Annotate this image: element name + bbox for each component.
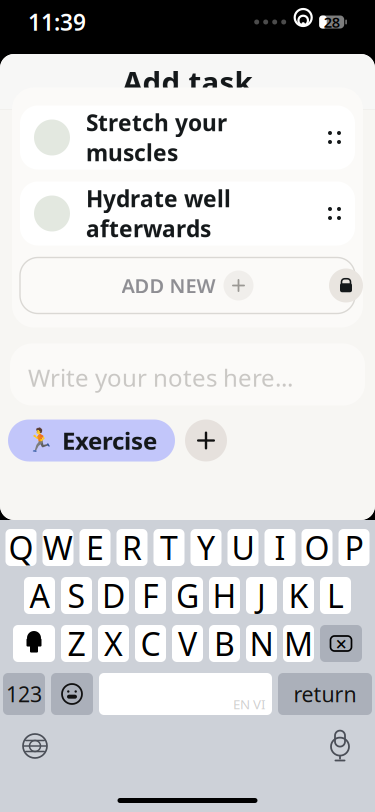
staticText: K [288,574,308,617]
button[interactable]: C [135,625,166,662]
button[interactable]: Hydrate well afterwards [20,181,355,245]
button[interactable]: Stretch your muscles [20,105,355,169]
staticText: return [293,680,356,708]
button[interactable]: 123 [3,673,45,715]
staticText: J [257,574,266,617]
staticText: E [86,526,104,569]
staticText: Add task [122,62,252,101]
button[interactable]: D [98,577,129,614]
button[interactable]: E [79,529,110,566]
button[interactable]: Space [99,673,272,715]
button[interactable]: M [283,625,314,662]
staticText: Exercise [62,425,157,456]
staticText: Q [8,526,33,569]
staticText: M [284,622,313,665]
staticText: 28 [324,12,340,32]
button[interactable]: 🏃 [8,419,175,461]
button[interactable]: Z [61,625,92,662]
staticText: S [67,574,85,617]
staticText: C [140,622,160,665]
button[interactable]: K [283,577,314,614]
staticText: EN VI [233,695,266,713]
staticText: Write your notes here... [28,361,293,393]
button[interactable]: Dictate [325,731,355,761]
staticText: B [214,622,235,665]
staticText: 123 [6,680,42,708]
button[interactable]: Shift [13,625,55,662]
staticText: W [43,526,73,569]
staticText: D [102,574,125,617]
staticText: G [176,574,199,617]
button[interactable]: Q [5,529,36,566]
button[interactable]: R [116,529,147,566]
button[interactable]: H [209,577,240,614]
staticText: U [231,526,254,569]
staticText: X [104,622,123,665]
staticText: I [274,526,285,569]
staticText: × [335,630,346,657]
button[interactable]: J [246,577,277,614]
button[interactable]: P [338,529,369,566]
button[interactable]: V [172,625,203,662]
button[interactable]: G [172,577,203,614]
button[interactable]: Switch keyboard [20,731,50,761]
button[interactable]: X [98,625,129,662]
staticText: ADD NEW [121,272,215,299]
button[interactable]: I [264,529,295,566]
staticText: R [122,526,142,569]
staticText: V [178,622,197,665]
staticText: 11:39 [28,7,86,37]
button[interactable]: W [42,529,73,566]
button[interactable]: Emoji [51,673,93,715]
staticText: T [160,526,178,569]
button[interactable]: Delete [320,625,362,662]
button[interactable]: A [24,577,55,614]
button[interactable]: T [153,529,184,566]
button[interactable]: F [135,577,166,614]
button[interactable]: N [246,625,277,662]
button[interactable]: B [209,625,240,662]
button[interactable]: Add tag [185,419,227,461]
staticText: F [142,574,159,617]
button[interactable]: Lock list [329,268,363,302]
button[interactable]: U [227,529,258,566]
button[interactable]: S [61,577,92,614]
staticText: N [249,622,273,665]
staticText: Hydrate well afterwards [86,183,231,244]
staticText: P [344,526,363,569]
staticText: 🏃 [26,428,54,453]
staticText: Stretch your muscles [86,107,227,168]
staticText: O [304,526,329,569]
button[interactable]: O [301,529,332,566]
button[interactable]: Y [190,529,221,566]
staticText: L [327,574,344,617]
button[interactable]: ADD NEW [20,257,355,313]
staticText: Z [67,622,85,665]
button[interactable]: Write your notes here... [10,343,365,405]
button[interactable]: L [320,577,351,614]
staticText: A [29,574,49,617]
staticText: Y [197,526,215,569]
button[interactable]: return [278,673,372,715]
staticText: H [212,574,236,617]
